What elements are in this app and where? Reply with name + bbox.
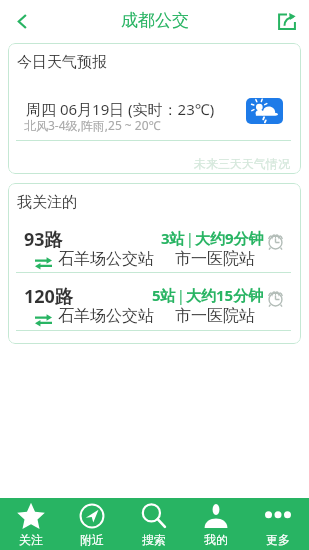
staticText: 附近	[80, 532, 104, 547]
staticText: 未来三天天气情况	[194, 156, 290, 171]
staticText: 我关注的	[17, 193, 77, 212]
staticText: 今日天气预报	[17, 53, 107, 72]
button[interactable]: 关注	[0, 498, 61, 550]
staticText: 我的	[204, 532, 228, 547]
button[interactable]: 附近	[61, 498, 123, 550]
staticText: 周四 06月19日 (实时：23℃)	[26, 99, 215, 119]
button[interactable]: 120路	[8, 284, 301, 340]
button[interactable]: 我的	[185, 498, 247, 550]
staticText: 5站	[152, 285, 176, 305]
staticText: 成都公交	[121, 10, 189, 31]
staticText: 大约15分钟	[186, 285, 264, 305]
staticText: 石羊场公交站	[58, 306, 154, 326]
button[interactable]: Share	[269, 3, 305, 39]
staticText: 石羊场公交站	[58, 249, 154, 269]
staticText: 市一医院站	[175, 306, 255, 326]
staticText: 120路	[24, 284, 73, 309]
staticText: 市一医院站	[175, 249, 255, 269]
staticText: |	[186, 229, 194, 248]
staticText: 大约9分钟	[195, 228, 264, 248]
button[interactable]: 搜索	[123, 498, 185, 550]
button[interactable]: 更多	[247, 498, 309, 550]
button[interactable]: Alarm	[266, 232, 284, 250]
button[interactable]: 93路	[8, 227, 301, 283]
button[interactable]: Alarm	[266, 289, 284, 307]
staticText: 93路	[24, 227, 63, 252]
staticText: 关注	[19, 532, 43, 547]
staticText: 3站	[161, 228, 185, 248]
button[interactable]: Back	[4, 3, 40, 39]
button[interactable]: 今日天气预报	[8, 43, 301, 174]
staticText: 北风3-4级,阵雨,25 ~ 20℃	[24, 117, 161, 133]
staticText: |	[177, 286, 185, 305]
staticText: 搜索	[142, 532, 166, 547]
staticText: 更多	[266, 532, 290, 547]
